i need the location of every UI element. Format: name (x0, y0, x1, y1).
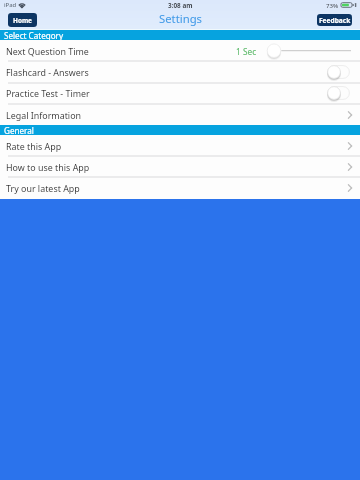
staticText: Legal Information (6, 109, 82, 121)
staticText: Rate this App (6, 140, 62, 152)
staticText: How to use this App (6, 161, 90, 173)
staticText: iPad (4, 1, 17, 9)
staticText: 73% (326, 1, 339, 9)
button[interactable]: Practice Test - Timer (0, 82, 360, 103)
button[interactable]: How to use this App (0, 156, 360, 177)
button[interactable]: Feedback (317, 14, 352, 26)
button[interactable]: Toggle (327, 86, 350, 100)
button[interactable]: Next Question Time (0, 40, 360, 61)
staticText: 1 Sec (236, 46, 257, 57)
button[interactable]: Rate this App (0, 135, 360, 156)
staticText: Flashcard - Answers (6, 66, 89, 78)
staticText: 3:08 am (168, 1, 193, 10)
button[interactable]: Try our latest App (0, 177, 360, 198)
staticText: General (4, 125, 34, 135)
staticText: Feedback (319, 16, 351, 25)
button[interactable]: Legal Information (0, 104, 360, 125)
staticText: Practice Test - Timer (6, 87, 90, 99)
staticText: Try our latest App (6, 182, 80, 194)
staticText: Select Category (4, 30, 64, 40)
button[interactable]: Flashcard - Answers (0, 61, 360, 82)
staticText: Settings (159, 11, 202, 26)
button[interactable]: Toggle (327, 65, 350, 79)
button[interactable]: Question time slider (257, 42, 360, 60)
button[interactable]: Home (8, 13, 37, 27)
staticText: Home (13, 16, 32, 25)
staticText: Next Question Time (6, 45, 89, 57)
